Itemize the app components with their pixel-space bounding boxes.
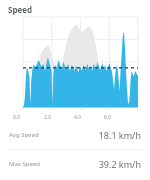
staticText: 0.0 [13, 114, 21, 121]
staticText: 2.0 [44, 114, 52, 121]
button[interactable]: Max Speed [0, 150, 150, 178]
button[interactable]: Avg Speed [0, 121, 150, 149]
staticText: 18.1 km/h [98, 129, 141, 141]
staticText: Max Speed [9, 160, 40, 168]
staticText: 6.0 [104, 114, 112, 121]
staticText: 39.2 km/h [98, 158, 141, 170]
staticText: Speed [8, 4, 33, 15]
staticText: Avg Speed [9, 131, 39, 139]
staticText: 4.0 [74, 114, 82, 121]
